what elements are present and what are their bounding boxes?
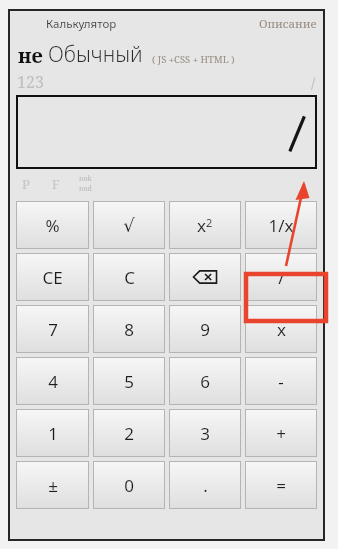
staticText: 1 [48, 422, 58, 445]
staticText: / [311, 72, 316, 92]
button[interactable]: / [246, 254, 316, 300]
staticText: 1/x [268, 214, 294, 237]
staticText: . [203, 474, 208, 497]
staticText: 7 [48, 318, 58, 341]
button[interactable]: 9 [170, 306, 240, 352]
staticText: x [277, 318, 286, 341]
button[interactable]: + [246, 410, 316, 456]
button[interactable]: 2 [94, 410, 164, 456]
staticText: CE [42, 266, 63, 289]
button[interactable]: 5 [94, 358, 164, 404]
staticText: F [52, 175, 60, 193]
button[interactable]: 1 [17, 410, 88, 456]
button[interactable]: √ [94, 202, 164, 248]
staticText: 2 [206, 215, 213, 230]
button[interactable]: x [170, 202, 240, 248]
staticText: 6 [200, 370, 210, 393]
staticText: x [197, 214, 206, 237]
staticText: ± [48, 474, 58, 497]
staticText: не [18, 42, 43, 69]
button[interactable]: CE [17, 254, 88, 300]
button[interactable]: 1/x [246, 202, 316, 248]
staticText: 5 [124, 370, 134, 393]
button[interactable]: C [94, 254, 164, 300]
staticText: 0 [124, 474, 134, 497]
staticText: Обычный [48, 40, 143, 69]
staticText: 2 [124, 422, 134, 445]
staticText: P [22, 175, 30, 193]
button[interactable]: 8 [94, 306, 164, 352]
staticText: √ [123, 215, 135, 236]
staticText: = [276, 474, 286, 497]
button[interactable]: 6 [170, 358, 240, 404]
staticText: Калькулятор [46, 16, 117, 32]
button[interactable]: x [246, 306, 316, 352]
staticText: / [278, 266, 285, 289]
button[interactable]: 0 [94, 462, 164, 508]
button[interactable]: % [17, 202, 88, 248]
button[interactable]: - [246, 358, 316, 404]
staticText: 8 [124, 318, 134, 341]
staticText: 4 [48, 370, 58, 393]
staticText: - [278, 370, 284, 393]
staticText: 123 [17, 71, 44, 93]
button[interactable]: 7 [17, 306, 88, 352]
staticText: C [124, 266, 135, 289]
staticText: nod [79, 184, 92, 194]
staticText: ( JS +CSS + HTML ) [152, 53, 235, 66]
staticText: nok [79, 174, 92, 184]
button[interactable]: Описание [259, 16, 317, 32]
staticText: 3 [200, 422, 210, 445]
staticText: 9 [200, 318, 210, 341]
button[interactable]: = [246, 462, 316, 508]
button[interactable]: 4 [17, 358, 88, 404]
staticText: % [45, 214, 60, 237]
button[interactable]: Backspace [170, 254, 240, 300]
button[interactable]: . [170, 462, 240, 508]
button[interactable]: ± [17, 462, 88, 508]
staticText: + [276, 422, 286, 445]
button[interactable]: 3 [170, 410, 240, 456]
